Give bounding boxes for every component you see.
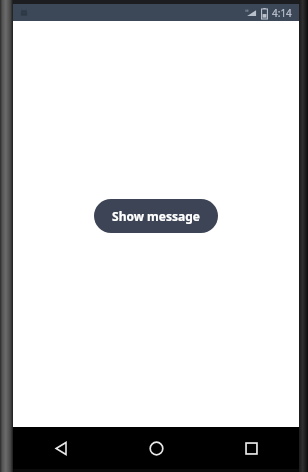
- button[interactable]: Back: [13, 427, 109, 469]
- staticText: 4:14: [272, 6, 292, 20]
- button[interactable]: Home: [109, 427, 204, 469]
- button[interactable]: Show message: [94, 199, 218, 233]
- staticText: Show message: [112, 208, 200, 224]
- button[interactable]: Recent apps: [204, 427, 299, 469]
